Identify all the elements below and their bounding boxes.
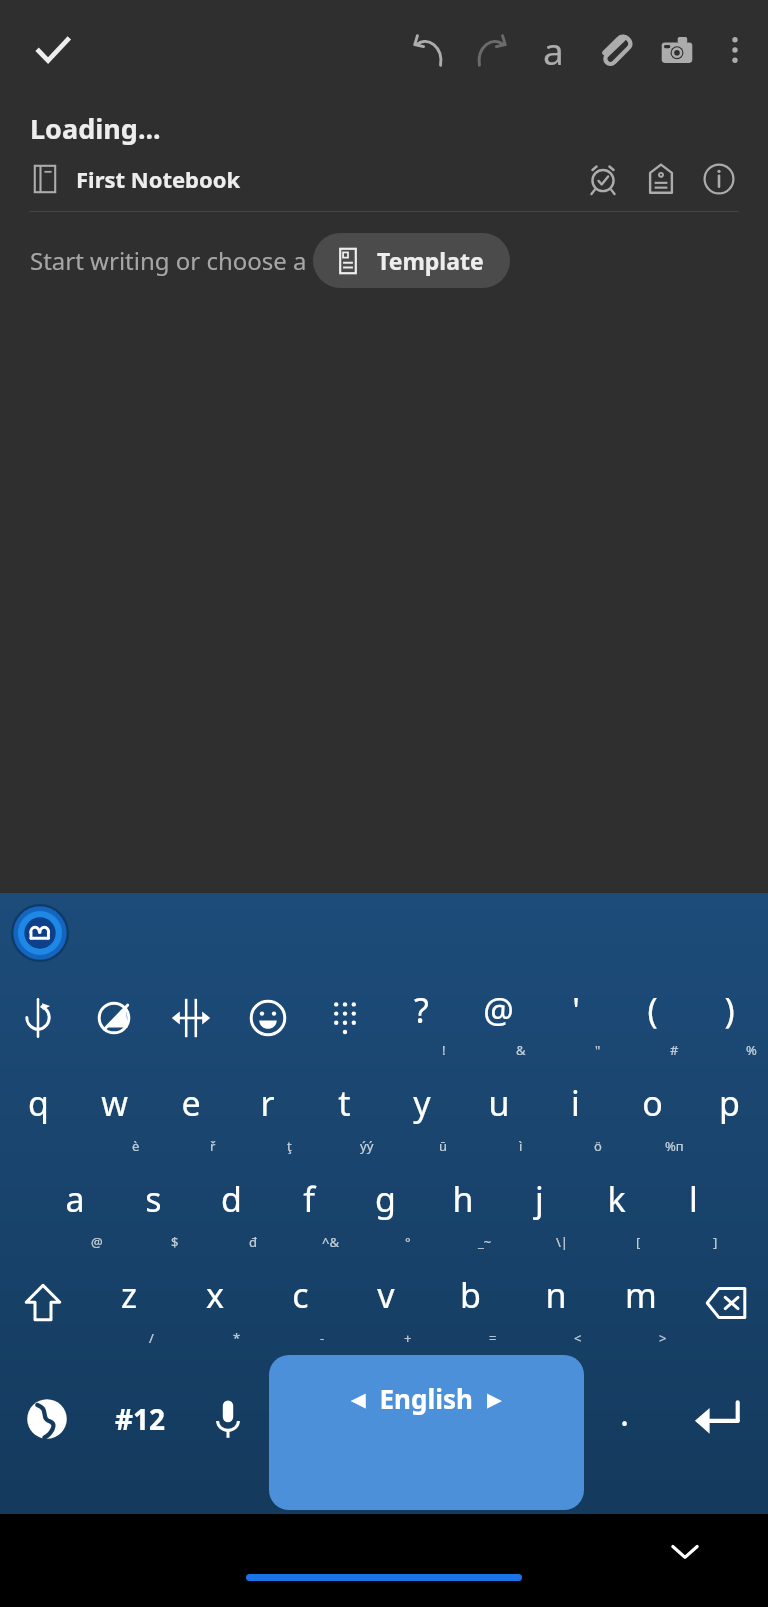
staticText: o [642,1080,663,1126]
button[interactable]: p [691,1063,768,1159]
staticText: g [375,1176,396,1222]
button[interactable]: Attach file [584,19,646,81]
staticText: @ [91,1233,103,1251]
staticText: ? [414,987,429,1033]
button[interactable]: Enter [666,1351,768,1514]
staticText: f [303,1176,315,1222]
button[interactable]: Keyboard menu [8,901,72,965]
button[interactable]: a [36,1159,114,1255]
staticText: ýý [360,1137,374,1155]
staticText: x [206,1272,224,1318]
button[interactable]: f [270,1159,347,1255]
button[interactable]: w [76,1063,152,1159]
button[interactable]: Text formatting [522,19,584,81]
staticText: h [452,1176,474,1222]
button[interactable]: More options [708,23,762,77]
button[interactable]: e [152,1063,229,1159]
staticText: è [132,1137,140,1155]
button[interactable]: Hide keyboard [658,1524,712,1578]
staticText: #12 [115,1400,166,1438]
button[interactable]: First Notebook [30,158,241,200]
button[interactable]: Redo [460,19,522,81]
button[interactable]: ) [691,973,768,1063]
staticText: ▶ [487,1388,502,1410]
staticText: ^& [322,1233,339,1251]
staticText: English [366,1381,487,1416]
button[interactable]: Voice input [187,1351,269,1514]
staticText: c [292,1272,309,1318]
staticText: Template [377,245,484,276]
button[interactable]: Template [313,233,510,288]
button[interactable]: ' [537,973,614,1063]
staticText: ř [210,1137,216,1155]
button[interactable]: y [383,1063,460,1159]
button[interactable]: Done [22,19,84,81]
staticText: ( [647,987,658,1033]
staticText: ◀ [351,1388,366,1410]
button[interactable]: resize [152,973,229,1063]
staticText: @ [483,987,514,1033]
staticText: ) [724,987,735,1033]
button[interactable]: o [614,1063,691,1159]
staticText: = [489,1329,497,1347]
button[interactable]: Undo [398,19,460,81]
staticText: _~ [478,1233,492,1251]
staticText: d [221,1176,242,1222]
button[interactable]: Reminder [574,150,632,208]
button[interactable]: j [501,1159,578,1255]
button[interactable]: m [598,1255,683,1351]
button[interactable]: #12 [93,1351,187,1514]
button[interactable]: v [343,1255,428,1351]
staticText: n [545,1272,567,1318]
button[interactable]: . [584,1351,666,1514]
button[interactable]: ◀ [269,1355,584,1510]
button[interactable]: pie [76,973,152,1063]
staticText: ] [713,1233,718,1251]
button[interactable]: h [424,1159,501,1255]
button[interactable]: k [578,1159,655,1255]
button[interactable]: Camera [646,19,708,81]
staticText: # [670,1041,679,1059]
staticText: / [149,1329,154,1347]
button[interactable]: s [114,1159,192,1255]
staticText: - [320,1329,325,1347]
button[interactable]: q [0,1063,76,1159]
button[interactable]: x [172,1255,258,1351]
staticText: s [145,1176,162,1222]
staticText: + [404,1329,412,1347]
staticText: < [574,1329,582,1347]
button[interactable]: Note info [690,150,748,208]
button[interactable]: t [306,1063,383,1159]
button[interactable]: emoji [229,973,306,1063]
button[interactable]: backspace [683,1255,768,1351]
button[interactable]: keypad [306,973,383,1063]
staticText: y [413,1080,431,1126]
button[interactable]: Change language [0,1351,93,1514]
button[interactable]: shift [0,1255,86,1351]
button[interactable]: b [428,1255,513,1351]
staticText: %п [665,1137,684,1155]
button[interactable]: r [229,1063,306,1159]
staticText: e [181,1080,201,1126]
staticText: t [338,1080,351,1126]
button[interactable]: n [513,1255,598,1351]
button[interactable]: z [86,1255,172,1351]
button[interactable]: i [537,1063,614,1159]
button[interactable]: c [258,1255,343,1351]
button[interactable]: d [192,1159,270,1255]
button[interactable]: l [655,1159,732,1255]
staticText: ° [405,1233,411,1251]
staticText: ö [594,1137,602,1155]
staticText: p [719,1080,740,1126]
button[interactable]: g [347,1159,424,1255]
staticText: đ [249,1233,258,1251]
button[interactable]: @ [460,973,537,1063]
button[interactable]: u [460,1063,537,1159]
button[interactable]: refresh [0,973,76,1063]
button[interactable]: Tags [632,150,690,208]
button[interactable]: ( [614,973,691,1063]
staticText: i [571,1080,580,1126]
staticText: $ [171,1233,179,1251]
staticText: ţ [287,1137,292,1155]
button[interactable]: ? [383,973,460,1063]
